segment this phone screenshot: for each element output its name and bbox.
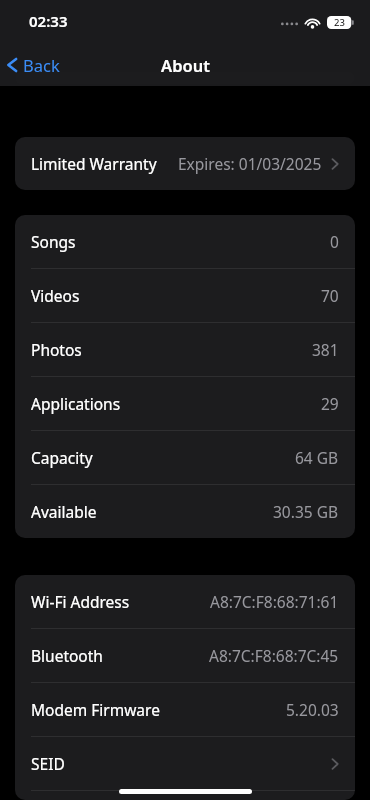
staticText: 0 — [330, 231, 339, 252]
staticText: Modem Firmware — [31, 699, 160, 720]
staticText: Bluetooth — [31, 645, 103, 666]
staticText: 02:33 — [29, 11, 68, 31]
staticText: Capacity — [31, 447, 93, 468]
button[interactable]: Modem Firmware — [15, 683, 355, 736]
staticText: Videos — [31, 285, 80, 306]
staticText: 70 — [321, 285, 339, 306]
staticText: About — [161, 54, 210, 76]
staticText: A8:7C:F8:68:7C:45 — [209, 645, 339, 666]
staticText: A8:7C:F8:68:71:61 — [210, 591, 339, 612]
button[interactable]: SEID — [15, 737, 355, 790]
button[interactable]: Back — [0, 48, 72, 82]
staticText: Wi-Fi Address — [31, 591, 130, 612]
other: Open details — [331, 157, 339, 171]
staticText: 23 — [334, 16, 345, 29]
staticText: Songs — [31, 231, 76, 252]
staticText: 5.20.03 — [286, 699, 339, 720]
button[interactable]: Applications — [15, 377, 355, 430]
button[interactable]: Bluetooth — [15, 629, 355, 682]
staticText: SEID — [31, 753, 65, 774]
staticText: Back — [23, 54, 60, 76]
button[interactable]: Capacity — [15, 431, 355, 484]
button[interactable]: Wi-Fi Address — [15, 575, 355, 628]
staticText: Expires: 01/03/2025 — [178, 153, 322, 174]
staticText: 381 — [312, 339, 339, 360]
other: Open details — [331, 757, 339, 771]
button[interactable]: Available — [15, 485, 355, 538]
button[interactable]: Songs — [15, 215, 355, 268]
staticText: Available — [31, 501, 97, 522]
staticText: Limited Warranty — [31, 153, 157, 174]
staticText: Applications — [31, 393, 121, 414]
staticText: Photos — [31, 339, 82, 360]
staticText: 30.35 GB — [273, 501, 339, 522]
staticText: 64 GB — [295, 447, 339, 468]
button[interactable] — [15, 791, 355, 800]
button[interactable]: Videos — [15, 269, 355, 322]
staticText: 29 — [321, 393, 339, 414]
button[interactable]: Limited Warranty — [15, 137, 355, 190]
button[interactable]: Photos — [15, 323, 355, 376]
